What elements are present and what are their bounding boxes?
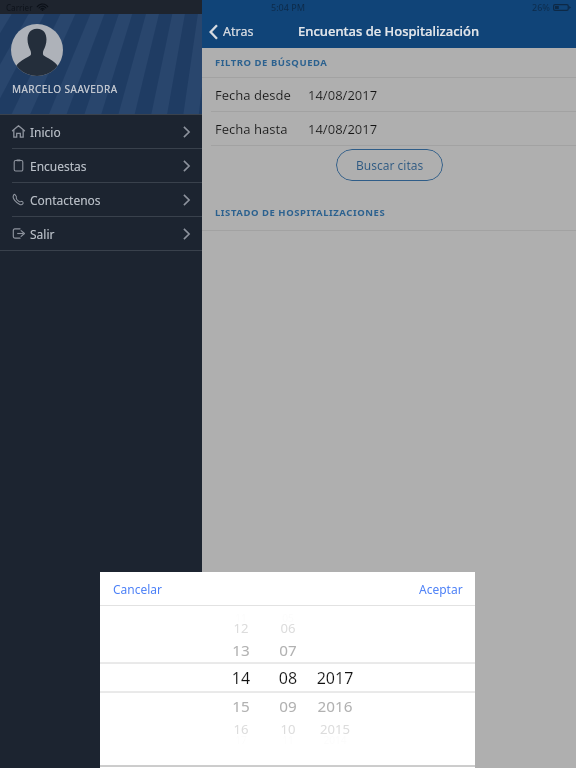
button[interactable]: Atras: [202, 19, 262, 44]
staticText: 2016: [295, 696, 375, 717]
staticText: Fecha desde: [215, 86, 308, 104]
staticText: Encuentas de Hospitalización: [298, 22, 480, 40]
button[interactable]: Encuestas: [0, 149, 202, 182]
staticText: Carrier: [6, 2, 33, 13]
staticText: 2014: [295, 733, 375, 747]
staticText: 06: [248, 619, 328, 637]
staticText: 14/08/2017: [308, 86, 378, 104]
staticText: 2017: [295, 667, 375, 689]
button[interactable]: Contactenos: [0, 183, 202, 216]
staticText: 07: [248, 640, 328, 661]
staticText: FILTRO DE BÚSQUEDA: [215, 56, 328, 69]
staticText: 13: [201, 640, 281, 661]
staticText: 10: [248, 720, 328, 738]
staticText: Aceptar: [419, 581, 463, 597]
button[interactable]: Buscar citas: [336, 149, 443, 181]
staticText: Inicio: [30, 124, 61, 140]
staticText: 16: [201, 720, 281, 738]
staticText: 14: [201, 667, 281, 689]
staticText: Atras: [223, 23, 254, 40]
staticText: Buscar citas: [356, 157, 424, 173]
button[interactable]: Salir: [0, 217, 202, 250]
staticText: Cancelar: [113, 581, 163, 597]
staticText: 11: [248, 733, 328, 747]
staticText: Encuestas: [30, 158, 87, 174]
staticText: 15: [201, 696, 281, 717]
button[interactable]: Fecha desde: [202, 78, 576, 111]
staticText: 08: [248, 667, 328, 689]
staticText: Salir: [30, 226, 55, 242]
staticText: LISTADO DE HOSPITALIZACIONES: [215, 206, 386, 219]
button[interactable]: Inicio: [0, 115, 202, 148]
staticText: Fecha hasta: [215, 120, 308, 138]
button[interactable]: Cancelar: [100, 574, 176, 604]
button[interactable]: Fecha hasta: [202, 112, 576, 145]
staticText: 14/08/2017: [308, 120, 378, 138]
button[interactable]: Aceptar: [407, 574, 475, 604]
staticText: 26%: [532, 1, 550, 13]
staticText: Contactenos: [30, 192, 101, 208]
staticText: 09: [248, 696, 328, 717]
staticText: 12: [201, 619, 281, 637]
staticText: 2015: [295, 720, 375, 738]
staticText: MARCELO SAAVEDRA: [12, 82, 118, 96]
staticText: 5:04 PM: [271, 1, 305, 13]
